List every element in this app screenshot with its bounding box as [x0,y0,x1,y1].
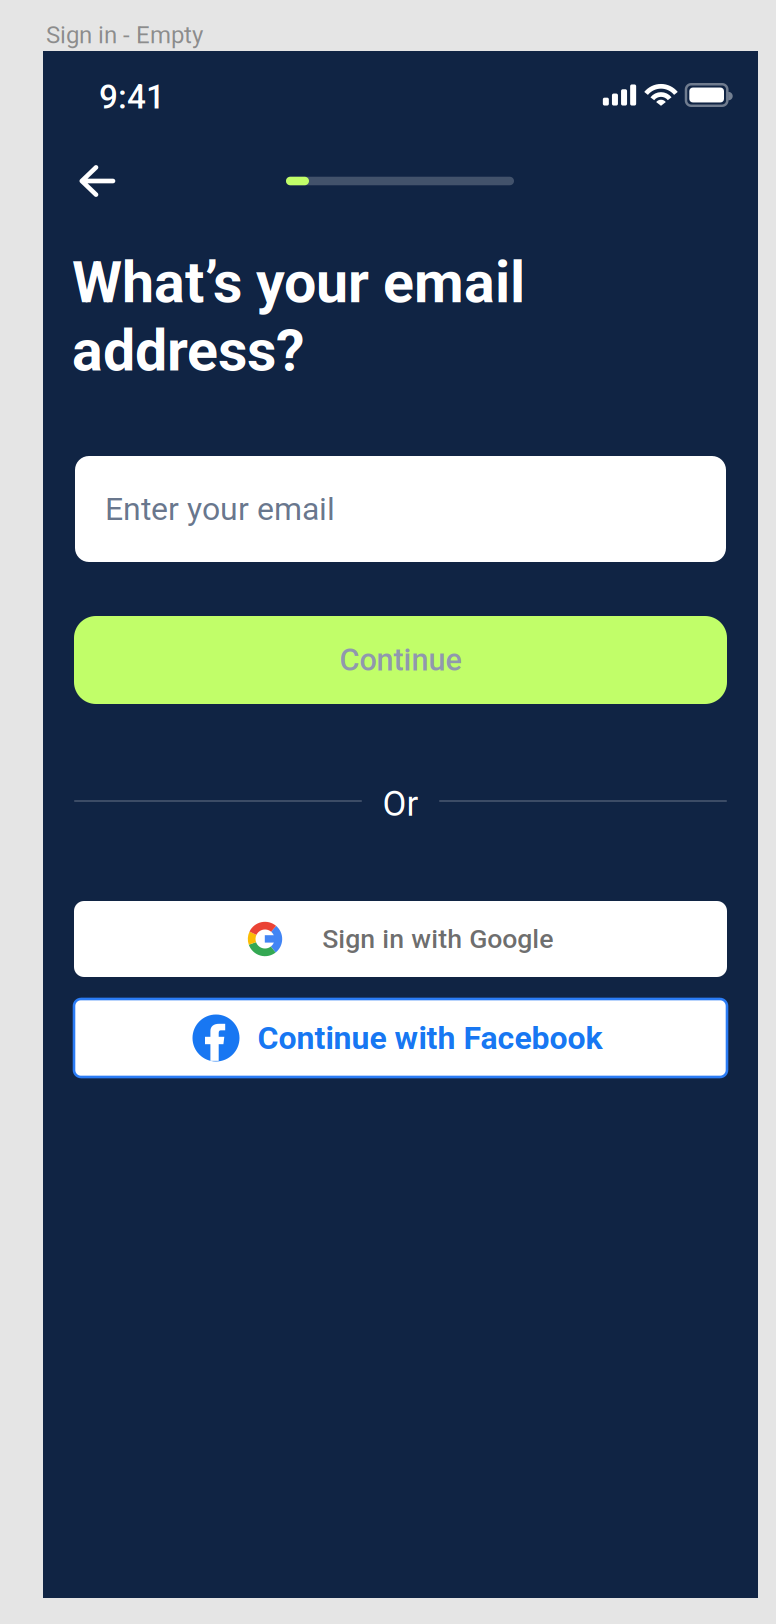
staticText: Sign in - Empty [46,21,203,49]
button[interactable]: Continue [74,616,727,704]
staticText: Or [382,784,418,824]
staticText: 9:41 [99,77,165,117]
staticText: What’s your email [72,249,525,316]
button[interactable]: Continue with Facebook [74,999,727,1077]
staticText: Sign in with Google [322,923,553,955]
button[interactable]: Back [64,152,130,210]
staticText: Continue with Facebook [257,1019,602,1057]
staticText: Continue [339,642,461,678]
staticText: address? [72,317,305,384]
button[interactable]: Sign in with Google [74,901,727,977]
staticText: Enter your email [105,490,335,528]
